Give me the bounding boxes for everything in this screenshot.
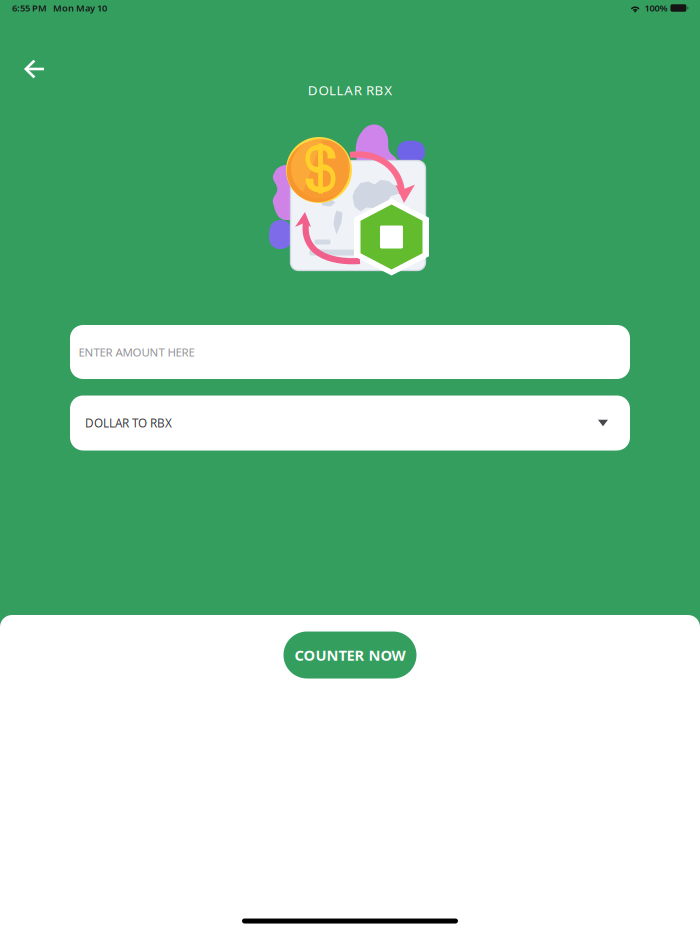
staticText: 100%	[644, 2, 667, 14]
staticText: DOLLAR RBX	[308, 81, 392, 99]
staticText: COUNTER NOW	[294, 645, 405, 665]
staticText: DOLLAR TO RBX	[85, 415, 172, 431]
button[interactable]: COUNTER NOW	[283, 631, 416, 678]
staticText: ENTER AMOUNT HERE	[78, 344, 194, 360]
staticText: 6:55 PM	[12, 2, 47, 14]
button[interactable]: DOLLAR TO RBX	[70, 395, 630, 450]
button[interactable]: ENTER AMOUNT HERE	[70, 325, 630, 379]
staticText: Mon May 10	[53, 2, 107, 14]
button[interactable]: Back	[13, 47, 56, 91]
